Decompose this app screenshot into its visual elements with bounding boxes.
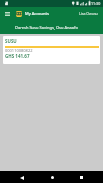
staticText: Daresh Susu Savings, Osu Anaafo bbox=[15, 25, 78, 30]
staticText: SUSU bbox=[5, 38, 17, 44]
button[interactable]: Lisa Owusu bbox=[79, 11, 98, 16]
staticText: 11:30 bbox=[91, 1, 101, 6]
button[interactable]: Open navigation menu bbox=[2, 8, 13, 19]
button[interactable]: Recent apps bbox=[74, 172, 88, 183]
staticText: Lisa Owusu bbox=[79, 11, 98, 16]
button[interactable]: SUSU bbox=[3, 36, 100, 64]
button[interactable]: Home bbox=[45, 172, 59, 183]
staticText: GHS 141.67 bbox=[5, 53, 30, 59]
staticText: My Accounts bbox=[25, 11, 49, 16]
button[interactable]: Back bbox=[15, 172, 29, 183]
staticText: 000110080822 bbox=[5, 48, 33, 53]
